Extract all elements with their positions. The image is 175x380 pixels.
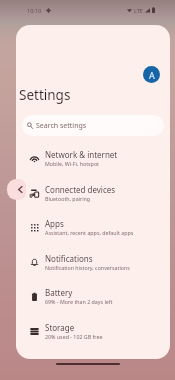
staticText: 10:10 [27, 7, 42, 14]
staticText: Search settings [36, 121, 87, 131]
staticText: Settings [19, 86, 71, 104]
button[interactable]: Notifications [16, 245, 170, 280]
button[interactable]: Network & internet [16, 141, 170, 176]
staticText: Battery [45, 287, 73, 298]
button[interactable]: Battery [16, 279, 170, 314]
staticText: Mobile, Wi-Fi, hotspot [45, 160, 99, 167]
staticText: Bluetooth, pairing [45, 195, 91, 202]
staticText: Apps [45, 218, 64, 229]
staticText: Notification history, conversations [45, 264, 130, 271]
staticText: 20% used - 102 GB free [45, 333, 103, 340]
button[interactable]: Connected devices [16, 176, 170, 211]
button[interactable]: Storage [16, 314, 170, 349]
staticText: A [149, 69, 155, 81]
button[interactable]: Account [143, 66, 160, 83]
staticText: Network & internet [45, 149, 118, 160]
button[interactable]: Search settings [22, 115, 164, 136]
staticText: Connected devices [45, 184, 116, 195]
staticText: LTE [134, 7, 143, 14]
staticText: 69% - More than 2 days left [45, 298, 113, 305]
staticText: Storage [45, 322, 75, 333]
staticText: Assistant, recent apps, default apps [45, 229, 134, 236]
button[interactable]: Apps [16, 210, 170, 245]
button[interactable]: Back [7, 179, 26, 200]
staticText: Notifications [45, 253, 93, 264]
